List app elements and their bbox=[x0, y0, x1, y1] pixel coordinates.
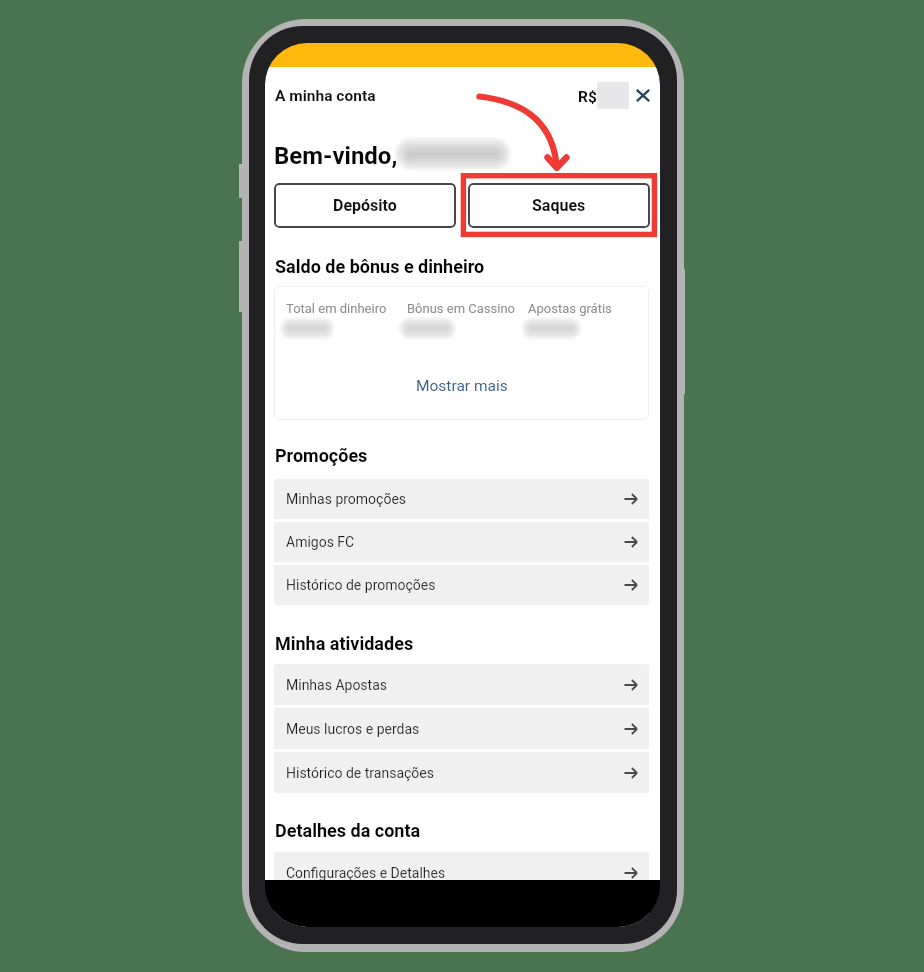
staticText: Saldo de bônus e dinheiro bbox=[275, 256, 485, 277]
staticText: A minha conta bbox=[275, 87, 376, 105]
staticText: Mostrar mais bbox=[416, 377, 508, 395]
button[interactable]: Amigos FC bbox=[274, 522, 649, 562]
button[interactable]: Histórico de transações bbox=[274, 752, 649, 793]
button[interactable]: Minhas Apostas bbox=[274, 664, 649, 705]
staticText: Detalhes da conta bbox=[275, 820, 421, 841]
staticText: Bem-vindo, bbox=[274, 142, 398, 170]
staticText: Minha atividades bbox=[275, 633, 414, 654]
button[interactable]: Mensagens bbox=[274, 896, 649, 927]
button[interactable]: Histórico de promoções bbox=[274, 565, 649, 605]
staticText: Configurações e Detalhes bbox=[286, 865, 446, 881]
button[interactable]: Minhas promoções bbox=[274, 479, 649, 519]
staticText: Bônus em Cassino bbox=[407, 301, 516, 316]
button[interactable]: Configurações e Detalhes bbox=[274, 852, 649, 893]
button[interactable]: Saques bbox=[468, 183, 650, 228]
staticText: Histórico de transações bbox=[286, 765, 434, 781]
staticText: Apostas grátis bbox=[528, 301, 612, 316]
staticText: Minhas Apostas bbox=[286, 677, 388, 693]
staticText: Promoções bbox=[275, 445, 368, 466]
button[interactable]: Meus lucros e perdas bbox=[274, 708, 649, 749]
staticText: Depósito bbox=[333, 196, 397, 215]
button[interactable]: Depósito bbox=[274, 183, 456, 228]
staticText: Histórico de promoções bbox=[286, 577, 436, 593]
staticText: Meus lucros e perdas bbox=[286, 721, 420, 737]
staticText: Amigos FC bbox=[286, 534, 355, 550]
button[interactable]: Fechar bbox=[630, 82, 656, 108]
staticText: Mensagens bbox=[286, 909, 359, 925]
staticText: R$ bbox=[578, 88, 597, 106]
button[interactable]: Mostrar mais bbox=[274, 373, 649, 399]
staticText: Minhas promoções bbox=[286, 491, 407, 507]
staticText: Saques bbox=[532, 196, 586, 215]
staticText: Total em dinheiro bbox=[286, 301, 387, 316]
